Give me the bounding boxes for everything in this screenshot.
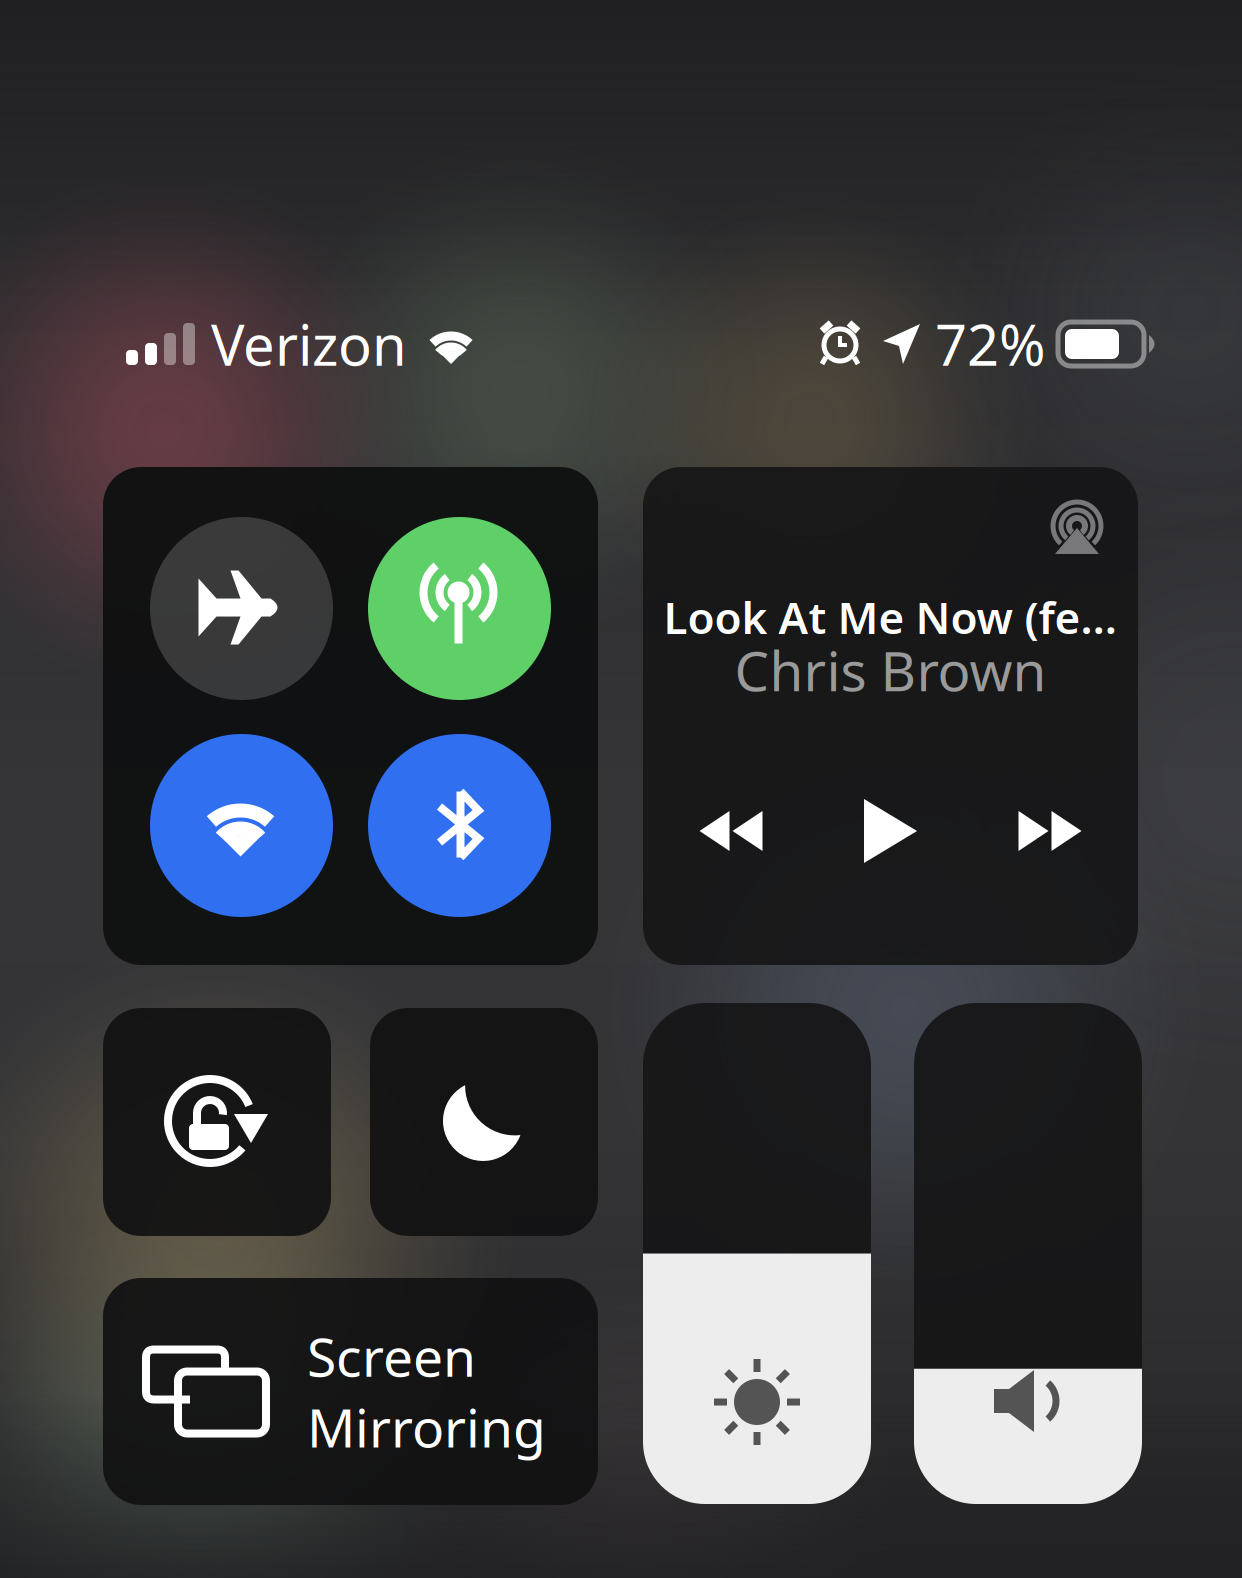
button[interactable]: Bluetooth bbox=[368, 734, 551, 917]
button[interactable]: Rotation Lock bbox=[103, 1008, 331, 1236]
staticText: Look At Me Now (fe… bbox=[663, 588, 1117, 646]
staticText: Chris Brown bbox=[734, 634, 1046, 706]
staticText: 72% bbox=[935, 307, 1046, 381]
button[interactable]: Wi-Fi bbox=[150, 734, 333, 917]
button[interactable]: Cellular Data bbox=[368, 517, 551, 700]
button[interactable]: Screen bbox=[103, 1278, 598, 1505]
button[interactable]: Previous Track bbox=[696, 810, 765, 852]
staticText: Screen bbox=[307, 1321, 476, 1391]
button[interactable]: Brightness bbox=[643, 1003, 871, 1504]
button[interactable]: Airplane Mode bbox=[150, 517, 333, 700]
button[interactable]: Play bbox=[861, 798, 920, 864]
staticText: Mirroring bbox=[307, 1391, 546, 1462]
button[interactable]: Do Not Disturb bbox=[370, 1008, 598, 1236]
button[interactable]: Next Track bbox=[1015, 810, 1084, 852]
button[interactable]: AirPlay bbox=[1050, 502, 1106, 560]
button[interactable]: Volume bbox=[914, 1003, 1142, 1504]
staticText: Verizon bbox=[211, 307, 407, 381]
